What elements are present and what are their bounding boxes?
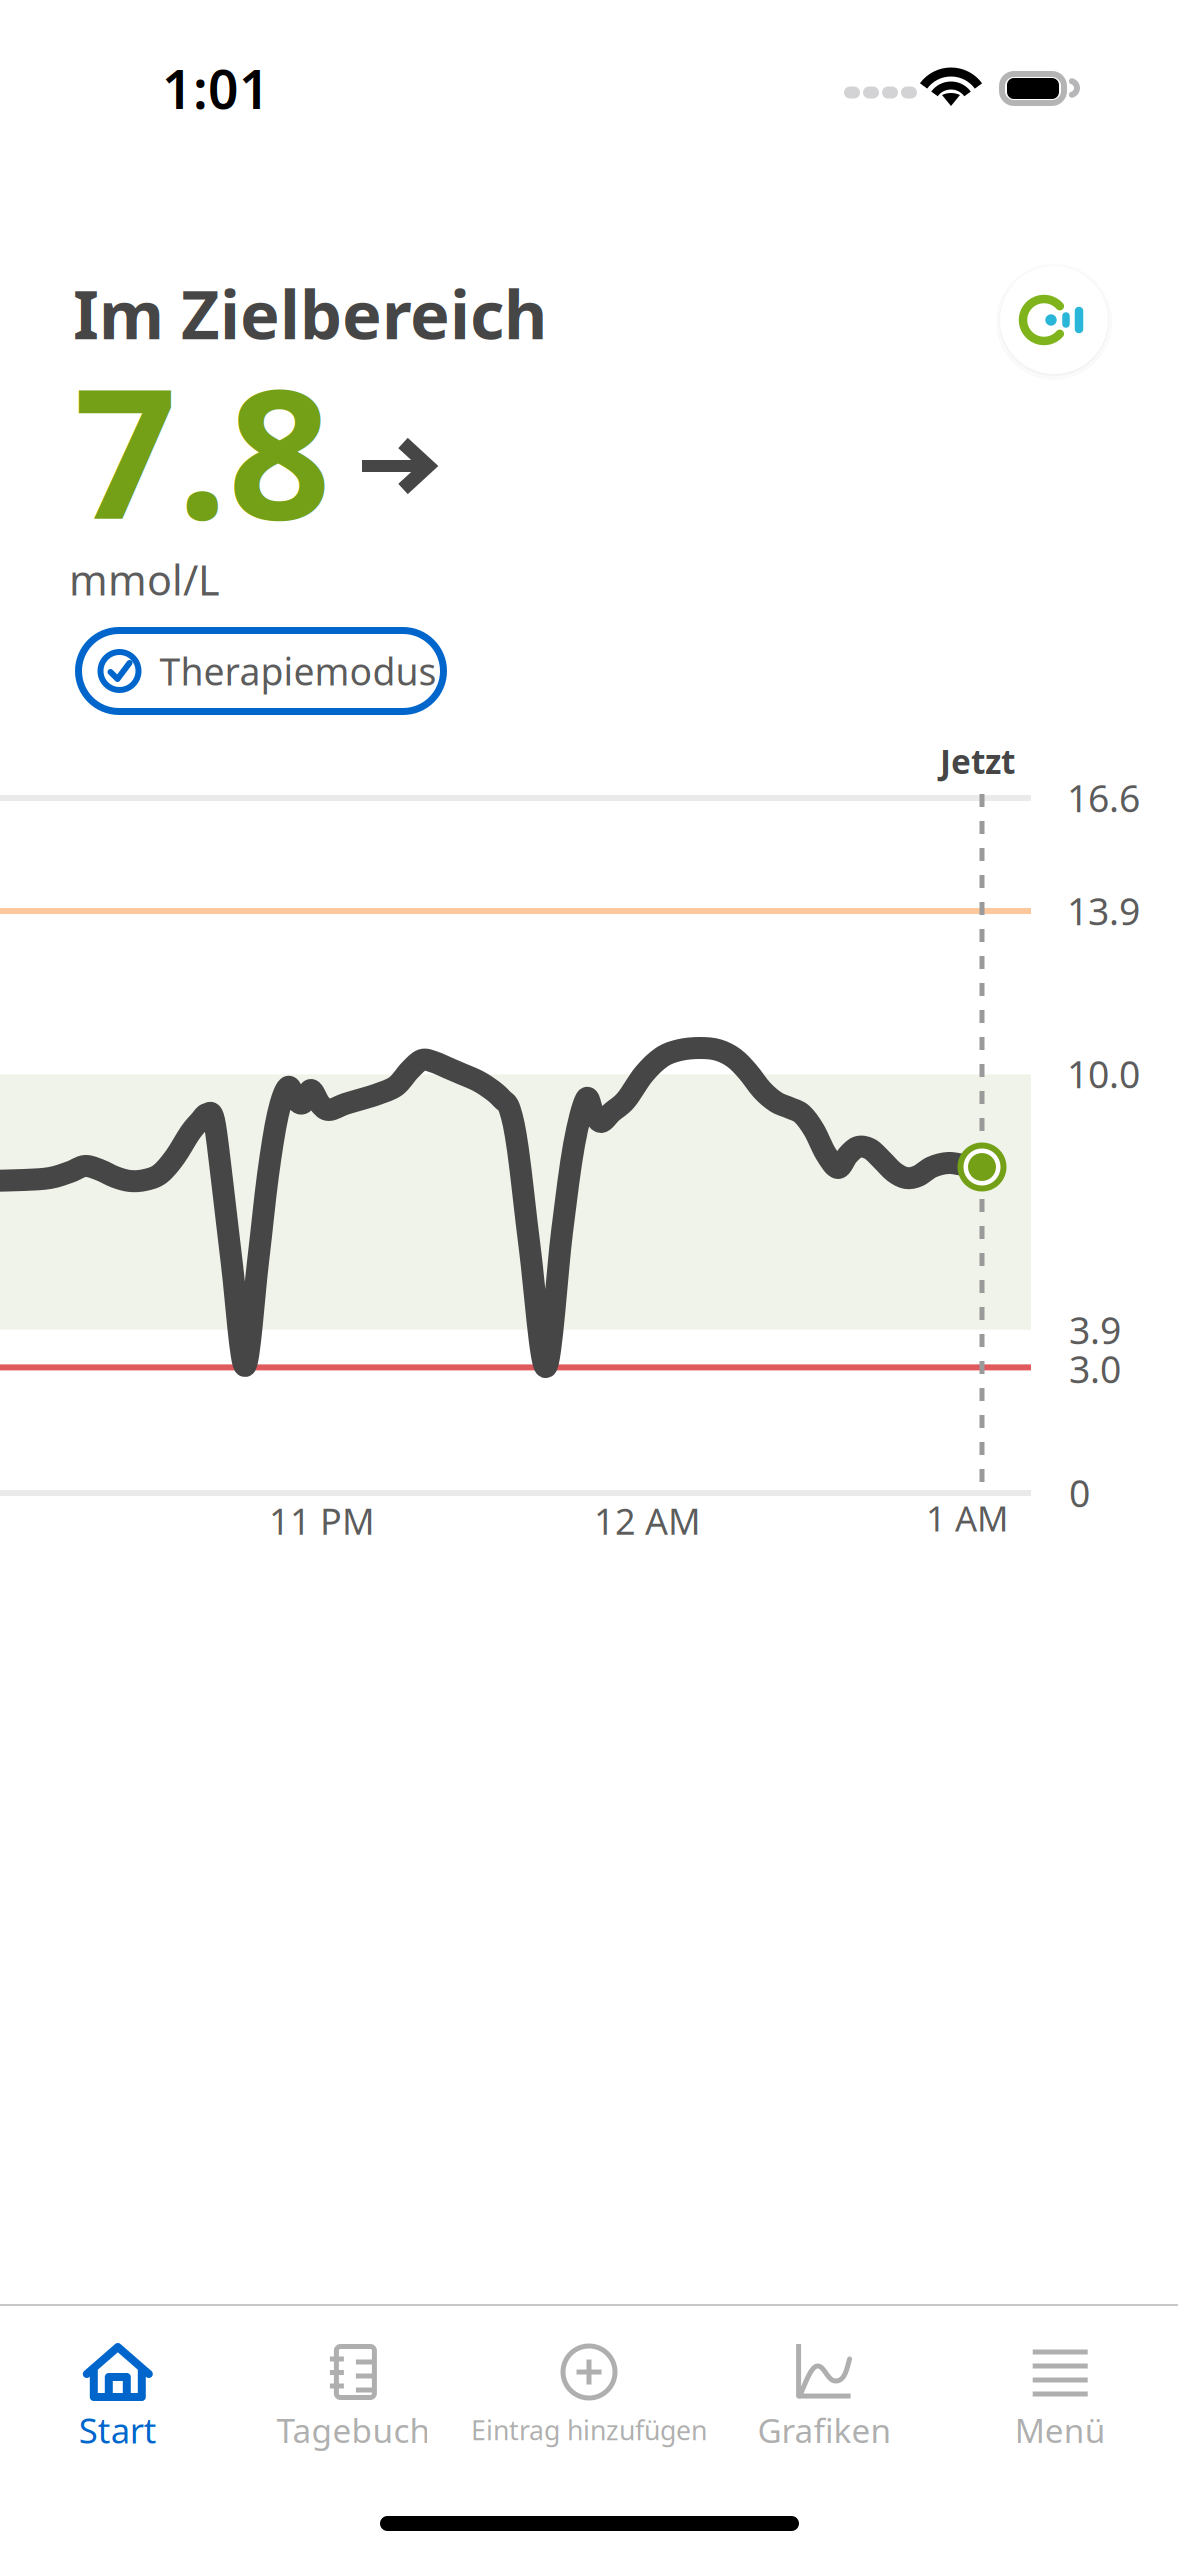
- staticText: 7.8: [74, 330, 331, 569]
- staticText: Therapiemodus: [159, 646, 436, 696]
- staticText: 11 PM: [269, 1497, 375, 1545]
- staticText: 1 AM: [926, 1495, 1008, 1541]
- staticText: 12 AM: [594, 1497, 701, 1545]
- staticText: Start: [79, 2407, 157, 2453]
- staticText: mmol/L: [69, 552, 220, 607]
- staticText: 3.0: [1069, 1344, 1121, 1394]
- staticText: 16.6: [1067, 773, 1140, 823]
- staticText: 3.9: [1069, 1305, 1121, 1355]
- staticText: 0: [1069, 1468, 1090, 1518]
- staticText: Eintrag hinzufügen: [471, 2412, 707, 2448]
- staticText: 1:01: [162, 53, 270, 124]
- staticText: Jetzt: [940, 739, 1015, 783]
- button[interactable]: Menü: [942, 2334, 1178, 2484]
- staticText: Im Zielbereich: [73, 269, 547, 357]
- button[interactable]: Eintrag hinzufügen: [471, 2334, 707, 2484]
- button[interactable]: Therapiemodus: [75, 627, 447, 715]
- button[interactable]: Tagebuch: [236, 2334, 471, 2484]
- staticText: Menü: [1015, 2408, 1106, 2452]
- staticText: Tagebuch: [276, 2408, 430, 2452]
- staticText: 13.9: [1067, 886, 1140, 936]
- button[interactable]: Start: [0, 2334, 236, 2484]
- staticText: 10.0: [1067, 1049, 1140, 1099]
- staticText: Grafiken: [758, 2408, 892, 2452]
- button[interactable]: Grafiken: [707, 2334, 942, 2484]
